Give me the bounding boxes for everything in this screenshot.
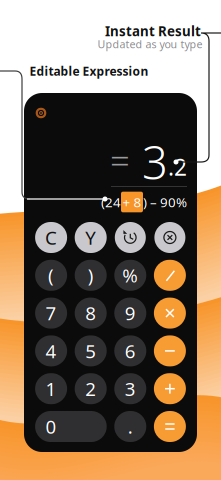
- button[interactable]: 3: [114, 373, 146, 404]
- button[interactable]: 4: [35, 335, 67, 366]
- staticText: 2: [85, 376, 96, 401]
- staticText: + 8: [122, 193, 141, 211]
- staticText: %: [122, 263, 138, 288]
- button[interactable]: Add: [154, 373, 186, 404]
- staticText: (: [48, 263, 54, 288]
- button[interactable]: 6: [114, 335, 146, 366]
- staticText: C: [45, 225, 57, 250]
- button[interactable]: Equals: [154, 411, 186, 442]
- button[interactable]: 7: [35, 298, 67, 329]
- button[interactable]: Settings: [35, 107, 47, 119]
- button[interactable]: Multiply: [154, 298, 186, 329]
- button[interactable]: 5: [75, 335, 107, 366]
- button[interactable]: %: [114, 260, 146, 291]
- button[interactable]: 2: [75, 373, 107, 404]
- button[interactable]: Subtract: [154, 335, 186, 366]
- staticText: 3: [130, 132, 168, 192]
- staticText: ) – 90%: [143, 193, 187, 211]
- staticText: 5: [85, 338, 96, 363]
- staticText: Updated as you type: [97, 37, 202, 51]
- staticText: 8: [85, 301, 96, 325]
- staticText: 7: [46, 301, 57, 325]
- staticText: 9: [125, 301, 136, 325]
- staticText: 0: [46, 414, 57, 439]
- staticText: .2: [168, 152, 187, 182]
- button[interactable]: 0: [35, 411, 107, 442]
- button[interactable]: .: [114, 411, 146, 442]
- button[interactable]: 8: [75, 298, 107, 329]
- staticText: ): [88, 263, 94, 288]
- button[interactable]: 9: [114, 298, 146, 329]
- staticText: 3: [125, 376, 136, 401]
- staticText: 6: [125, 338, 136, 363]
- staticText: (24: [101, 193, 121, 211]
- staticText: Y: [85, 225, 96, 250]
- button[interactable]: C: [35, 222, 67, 253]
- button[interactable]: (: [35, 260, 67, 291]
- button[interactable]: Divide: [154, 260, 186, 291]
- staticText: Instant Result: [105, 22, 201, 40]
- staticText: .: [128, 414, 133, 439]
- staticText: =: [110, 137, 130, 183]
- staticText: Editable Expression: [29, 63, 148, 79]
- staticText: 4: [46, 338, 57, 363]
- staticText: 1: [46, 376, 57, 401]
- button[interactable]: Delete: [154, 222, 186, 253]
- button[interactable]: History: [114, 222, 146, 253]
- button[interactable]: 1: [35, 373, 67, 404]
- button[interactable]: Y: [75, 222, 107, 253]
- button[interactable]: ): [75, 260, 107, 291]
